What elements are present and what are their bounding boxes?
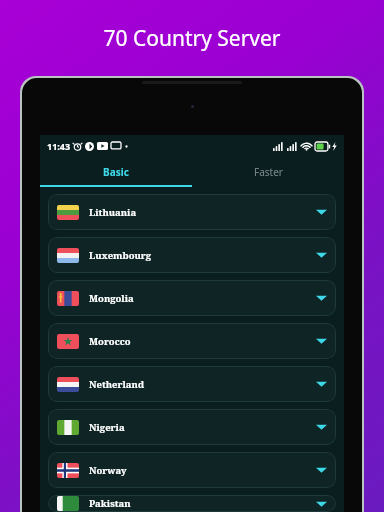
button[interactable]: Faster xyxy=(192,159,344,185)
button[interactable]: Netherland xyxy=(48,366,336,402)
staticText: 11:43 xyxy=(47,140,71,152)
staticText: 70 Country Server xyxy=(103,24,281,53)
other: Expand Morocco xyxy=(316,337,327,345)
staticText: Lithuania xyxy=(89,206,137,219)
staticText: Pakistan xyxy=(89,497,131,510)
button[interactable]: Mongolia xyxy=(48,280,336,316)
button[interactable]: Norway xyxy=(48,452,336,488)
button[interactable]: Lithuania xyxy=(48,194,336,230)
staticText: Norway xyxy=(89,464,127,477)
other: Expand Netherland xyxy=(316,380,327,388)
other: Expand Pakistan xyxy=(316,500,327,508)
button[interactable]: Luxembourg xyxy=(48,237,336,273)
button[interactable]: Pakistan xyxy=(48,495,336,512)
staticText: Netherland xyxy=(89,378,145,391)
other: Expand Luxembourg xyxy=(316,251,327,259)
staticText: Nigeria xyxy=(89,421,125,434)
button[interactable]: Basic xyxy=(40,159,192,185)
button[interactable]: Nigeria xyxy=(48,409,336,445)
other: Expand Nigeria xyxy=(316,423,327,431)
other: Expand Mongolia xyxy=(316,294,327,302)
staticText: Faster xyxy=(254,165,283,179)
staticText: Luxembourg xyxy=(89,249,152,262)
staticText: Basic xyxy=(103,165,129,179)
button[interactable]: Morocco xyxy=(48,323,336,359)
staticText: Morocco xyxy=(89,335,131,348)
staticText: Mongolia xyxy=(89,292,134,305)
other: Expand Lithuania xyxy=(316,208,327,216)
other: Expand Norway xyxy=(316,466,327,474)
